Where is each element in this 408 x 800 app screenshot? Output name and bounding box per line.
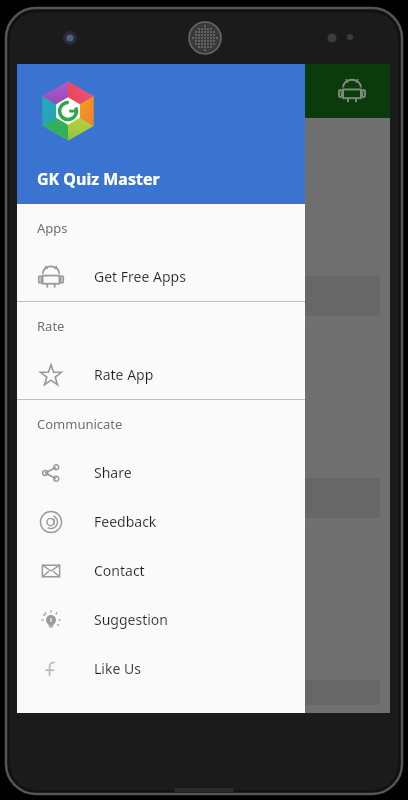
button[interactable]: COUNTRIES bbox=[27, 530, 380, 705]
button[interactable]: App icon bbox=[336, 75, 368, 107]
button[interactable]: Rate App bbox=[17, 350, 305, 399]
button[interactable]: Get Free Apps bbox=[17, 252, 305, 301]
staticText: Suggestion bbox=[94, 610, 168, 629]
button[interactable]: Contact bbox=[17, 546, 305, 595]
button[interactable]: Like Us bbox=[17, 644, 305, 693]
staticText: Like Us bbox=[94, 659, 141, 678]
button[interactable]: Feedback bbox=[17, 497, 305, 546]
staticText: Get Free Apps bbox=[94, 267, 186, 286]
staticText: Communicate bbox=[37, 415, 123, 433]
button[interactable]: HONORS bbox=[27, 126, 380, 316]
button[interactable]: Share bbox=[17, 448, 305, 497]
staticText: Apps bbox=[37, 219, 68, 237]
staticText: HONORS bbox=[41, 287, 101, 306]
button[interactable]: HISTORY bbox=[27, 328, 380, 518]
staticText: Contact bbox=[94, 561, 145, 580]
staticText: Rate App bbox=[94, 365, 154, 384]
staticText: Feedback bbox=[94, 512, 157, 531]
staticText: Rate bbox=[37, 317, 65, 335]
button[interactable]: Suggestion bbox=[17, 595, 305, 644]
staticText: Share bbox=[94, 463, 132, 482]
staticText: GK Quiz Master bbox=[37, 168, 160, 190]
